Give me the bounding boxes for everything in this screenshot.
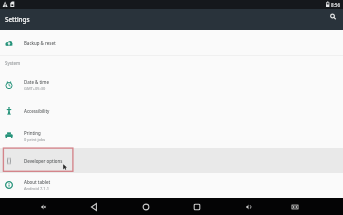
button[interactable]: Recent apps	[185, 198, 209, 215]
staticText: 8:56	[331, 2, 341, 8]
button[interactable]: Screenshot	[283, 198, 307, 215]
staticText: Printing	[24, 130, 41, 136]
button[interactable]: Volume up	[236, 198, 260, 215]
staticText: Backup & reset	[24, 40, 56, 46]
staticText: Android 7.1.1	[24, 186, 50, 191]
button[interactable]: Backup & reset	[0, 30, 343, 55]
staticText: 0 print jobs	[24, 137, 46, 142]
staticText: Date & time	[24, 79, 49, 85]
button[interactable]: About tablet	[0, 173, 343, 197]
staticText: System	[5, 60, 21, 66]
button[interactable]: Date & time	[0, 72, 343, 98]
staticText: Developer options	[24, 158, 63, 164]
button[interactable]: Back	[82, 198, 106, 215]
staticText: GMT+05:30	[24, 86, 46, 91]
staticText: Accessibility	[24, 108, 50, 114]
button[interactable]: Volume down	[31, 198, 55, 215]
button[interactable]: Search	[323, 12, 342, 27]
button[interactable]: Home	[134, 198, 158, 215]
button[interactable]: Accessibility	[0, 98, 343, 123]
button[interactable]: Printing	[0, 123, 343, 148]
staticText: About tablet	[24, 179, 51, 185]
staticText: Settings	[5, 15, 30, 24]
button[interactable]: Developer options	[0, 148, 343, 173]
